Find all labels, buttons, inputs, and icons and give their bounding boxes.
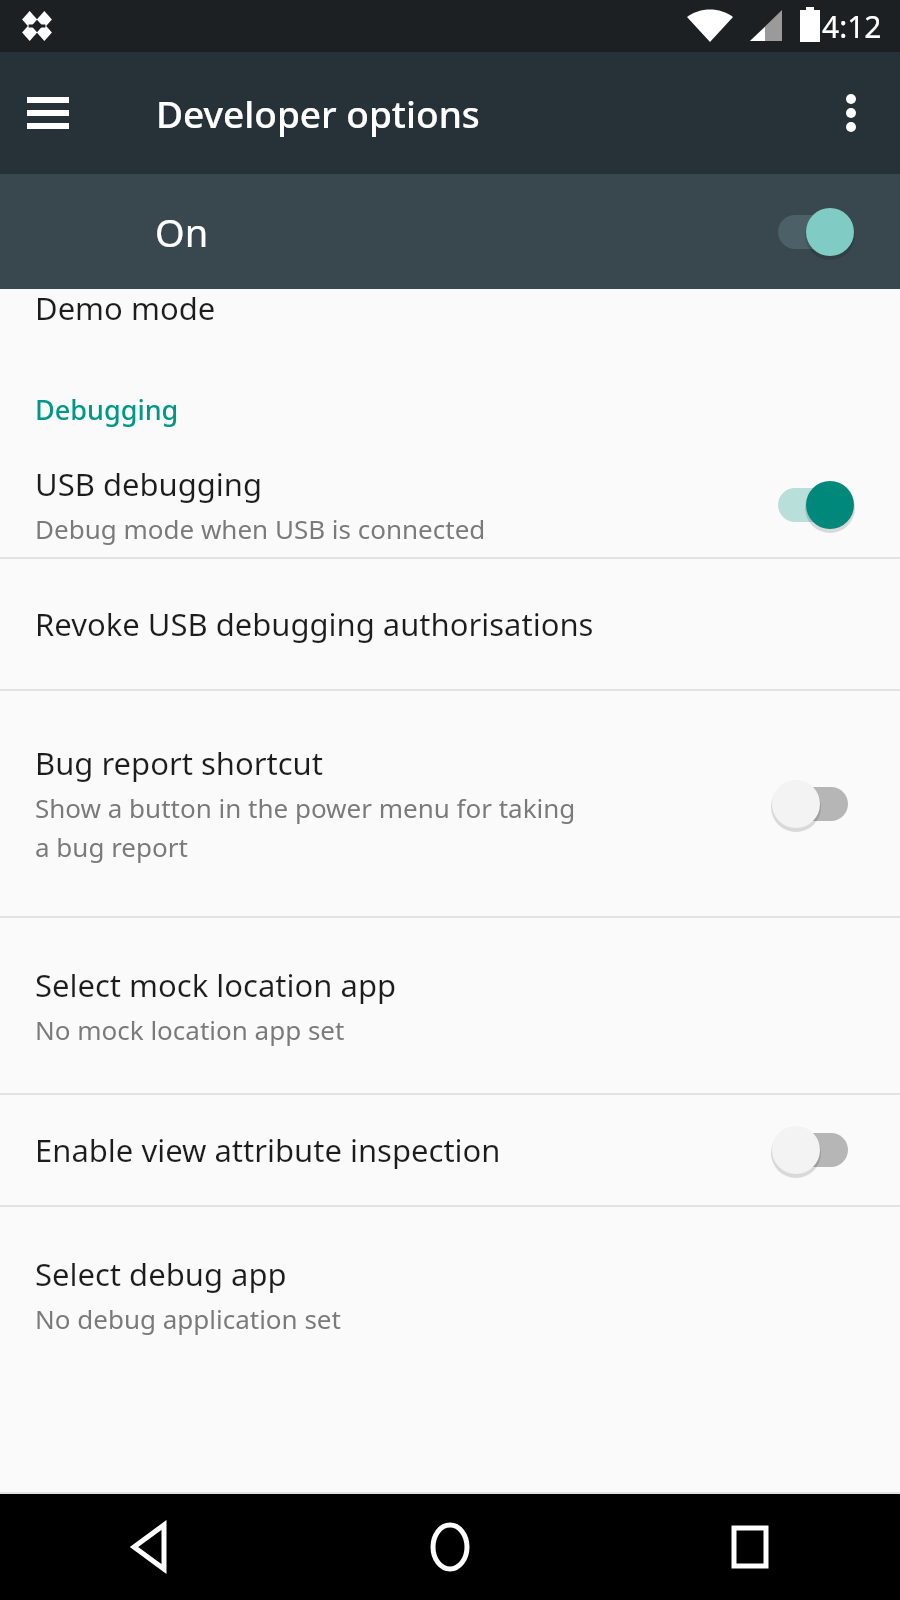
button[interactable]: Back xyxy=(0,1494,300,1600)
button[interactable]: Select mock location app xyxy=(0,918,900,1093)
staticText: Debug mode when USB is connected xyxy=(35,511,486,546)
button[interactable]: Bug report shortcut xyxy=(0,691,900,916)
button[interactable]: Demo mode xyxy=(0,289,900,367)
staticText: Demo mode xyxy=(35,287,216,329)
button[interactable]: Open navigation menu xyxy=(0,65,96,161)
staticText: Select debug app xyxy=(35,1253,287,1295)
button[interactable]: USB debugging xyxy=(0,452,900,557)
staticText: On xyxy=(155,206,209,258)
button[interactable]: Recent apps xyxy=(600,1494,900,1600)
button[interactable]: Home xyxy=(300,1494,600,1600)
button[interactable]: Enable view attribute inspection xyxy=(0,1095,900,1205)
staticText: USB debugging xyxy=(35,463,263,505)
staticText: Bug report shortcut xyxy=(35,742,323,784)
staticText: Revoke USB debugging authorisations xyxy=(35,603,594,645)
button[interactable]: More options xyxy=(804,65,900,161)
staticText: No mock location app set xyxy=(35,1012,345,1047)
staticText: No debug application set xyxy=(35,1301,341,1336)
staticText: Select mock location app xyxy=(35,964,397,1006)
button[interactable]: Revoke USB debugging authorisations xyxy=(0,559,900,689)
button[interactable]: Select debug app xyxy=(0,1207,900,1382)
staticText: Debugging xyxy=(35,391,179,428)
staticText: Developer options xyxy=(156,88,480,138)
staticText: Enable view attribute inspection xyxy=(35,1129,501,1171)
staticText: Show a button in the power menu for taki… xyxy=(35,790,576,865)
button[interactable]: On xyxy=(0,174,900,289)
staticText: 4:12 xyxy=(822,6,882,47)
